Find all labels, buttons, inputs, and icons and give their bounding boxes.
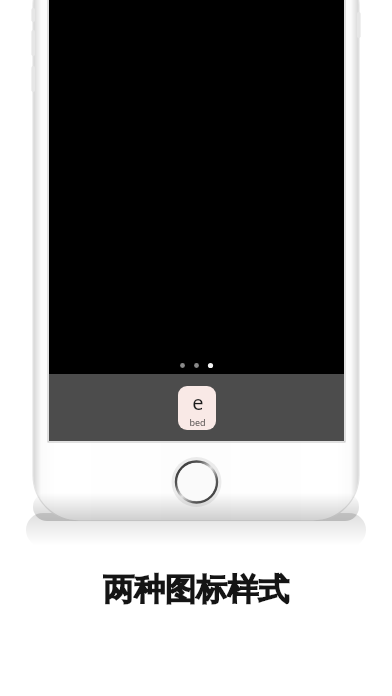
staticText: bed: [189, 416, 206, 428]
staticText: e: [192, 389, 204, 416]
button[interactable]: ebed app icon: [178, 386, 216, 430]
staticText: 两种图标样式: [103, 570, 289, 609]
